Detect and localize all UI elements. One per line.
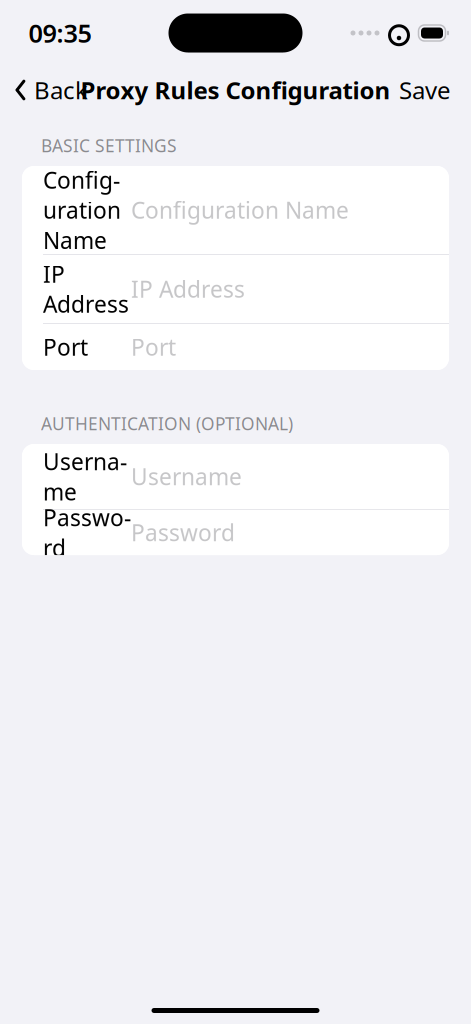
staticText: IP Address	[131, 274, 245, 304]
button[interactable]: Username	[22, 444, 449, 509]
staticText: Password	[131, 517, 235, 548]
button[interactable]: Password	[22, 510, 449, 555]
staticText: Username	[131, 461, 242, 492]
staticText: BASIC SETTINGS	[41, 134, 177, 157]
staticText: IP Address	[43, 259, 129, 319]
staticText: AUTHENTICATION (OPTIONAL)	[41, 412, 293, 435]
staticText: Configuration Name	[43, 165, 121, 255]
button[interactable]: Save	[387, 66, 471, 114]
staticText: Password	[43, 502, 131, 563]
button[interactable]: Back	[0, 66, 100, 114]
staticText: Proxy Rules Configuration	[80, 74, 390, 106]
staticText: Save	[399, 74, 451, 106]
staticText: Port	[131, 332, 176, 362]
button[interactable]: IP Address	[22, 255, 449, 323]
staticText: Username	[43, 446, 127, 507]
button[interactable]: Configuration Name	[22, 166, 449, 254]
button[interactable]: Port	[22, 324, 449, 370]
staticText: Back	[34, 74, 88, 106]
staticText: Configuration Name	[131, 195, 349, 225]
staticText: Port	[43, 332, 88, 362]
staticText: 09:35	[28, 16, 91, 50]
